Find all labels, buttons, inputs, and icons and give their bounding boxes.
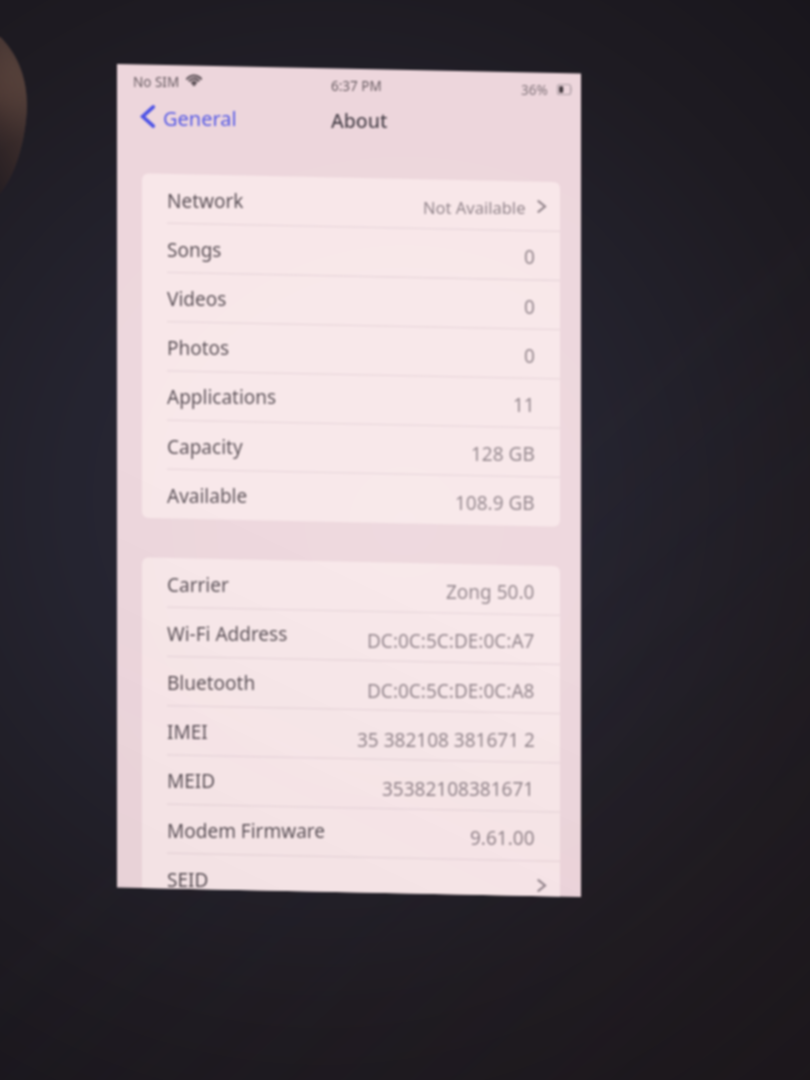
- staticText: 35382108381671: [382, 776, 535, 802]
- button[interactable]: Songs: [142, 223, 560, 272]
- staticText: 36%: [521, 81, 548, 99]
- staticText: Songs: [167, 237, 222, 263]
- button[interactable]: Applications: [142, 370, 560, 419]
- staticText: 128 GB: [471, 441, 535, 467]
- staticText: 9.61.00: [470, 825, 535, 851]
- staticText: 35 382108 381671 2: [357, 727, 535, 753]
- button[interactable]: Bluetooth: [142, 656, 560, 705]
- staticText: Available: [167, 483, 248, 509]
- button[interactable]: Carrier: [142, 558, 560, 607]
- staticText: 0: [524, 294, 535, 320]
- staticText: Carrier: [167, 572, 229, 598]
- staticText: SEID: [167, 867, 209, 893]
- staticText: 0: [524, 343, 535, 369]
- staticText: No SIM: [133, 73, 180, 91]
- staticText: 108.9 GB: [455, 490, 535, 516]
- staticText: 0: [524, 244, 535, 270]
- button[interactable]: SEID: [142, 853, 560, 897]
- button[interactable]: Back to General: [135, 99, 257, 135]
- staticText: 11: [513, 392, 535, 418]
- staticText: Network: [167, 188, 244, 214]
- button[interactable]: Videos: [142, 272, 560, 321]
- staticText: IMEI: [167, 719, 208, 745]
- staticText: Photos: [167, 335, 230, 361]
- staticText: Applications: [167, 384, 277, 410]
- staticText: About: [331, 107, 388, 134]
- button[interactable]: Wi-Fi Address: [142, 607, 560, 656]
- button[interactable]: Capacity: [142, 420, 560, 469]
- staticText: Zong 50.0: [446, 579, 535, 605]
- staticText: Capacity: [167, 434, 243, 460]
- button[interactable]: Available: [142, 469, 560, 518]
- staticText: Not Available: [423, 196, 526, 218]
- staticText: MEID: [167, 768, 216, 794]
- staticText: Videos: [167, 286, 227, 312]
- staticText: Wi-Fi Address: [167, 621, 288, 647]
- button[interactable]: Photos: [142, 321, 560, 370]
- staticText: DC:0C:5C:DE:0C:A7: [367, 628, 535, 654]
- button[interactable]: Modem Firmware: [142, 804, 560, 853]
- button[interactable]: Network: [142, 174, 560, 223]
- staticText: DC:0C:5C:DE:0C:A8: [367, 678, 535, 704]
- staticText: General: [163, 105, 237, 132]
- staticText: Bluetooth: [167, 670, 256, 696]
- staticText: 6:37 PM: [331, 77, 382, 95]
- button[interactable]: IMEI: [142, 705, 560, 754]
- button[interactable]: MEID: [142, 754, 560, 803]
- staticText: Modem Firmware: [167, 818, 325, 844]
